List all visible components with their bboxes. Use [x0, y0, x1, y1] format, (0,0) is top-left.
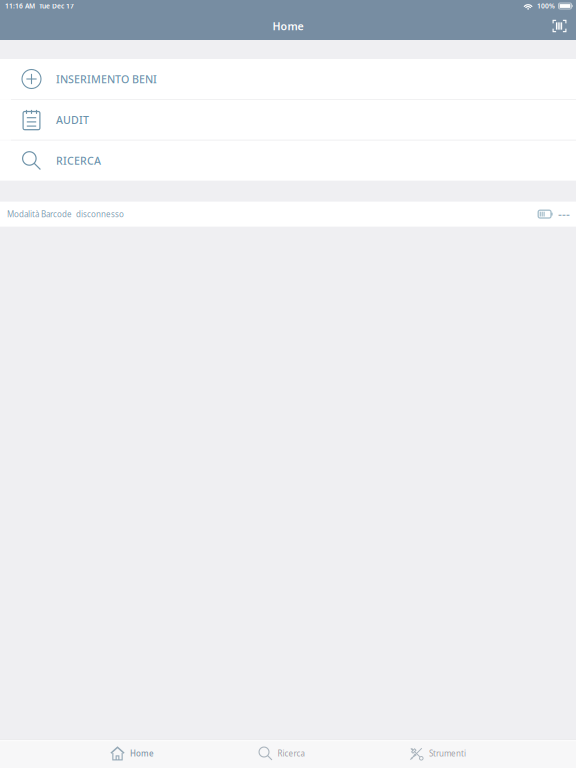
staticText: INSERIMENTO BENI: [56, 72, 157, 86]
button[interactable]: RICERCA: [0, 141, 576, 181]
staticText: Modalità Barcode disconnesso: [7, 209, 124, 219]
staticText: 100%: [537, 2, 555, 10]
staticText: Home: [272, 19, 303, 33]
staticText: 11:16 AM: [5, 2, 35, 10]
button[interactable]: Ricerca: [258, 739, 304, 768]
staticText: RICERCA: [56, 153, 101, 168]
staticText: AUDIT: [56, 113, 89, 127]
button[interactable]: Home: [110, 739, 154, 768]
staticText: Ricerca: [277, 748, 304, 759]
button[interactable]: AUDIT: [0, 100, 576, 140]
staticText: ---: [558, 206, 570, 222]
button[interactable]: Scan barcode: [547, 15, 572, 37]
button[interactable]: Strumenti: [409, 739, 466, 768]
staticText: Strumenti: [429, 748, 466, 759]
staticText: Home: [130, 748, 154, 759]
staticText: Tue Dec 17: [39, 2, 74, 10]
button[interactable]: INSERIMENTO BENI: [0, 59, 576, 99]
